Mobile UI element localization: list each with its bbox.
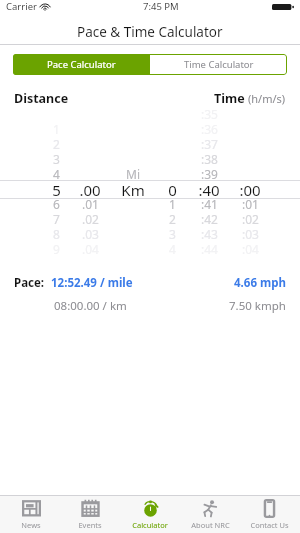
- staticText: 5: [52, 180, 61, 198]
- staticText: (h/m/s): [248, 91, 286, 106]
- staticText: :40: [198, 180, 220, 198]
- button[interactable]: About NRC: [181, 499, 239, 530]
- button[interactable]: Time Calculator: [150, 54, 287, 75]
- staticText: 4: [169, 241, 176, 257]
- staticText: News: [21, 520, 41, 530]
- staticText: Pace & Time Calculator: [77, 23, 223, 41]
- staticText: .03: [82, 226, 99, 242]
- staticText: Mi: [126, 166, 140, 182]
- staticText: About NRC: [191, 520, 230, 530]
- button[interactable]: Contact Us: [240, 499, 298, 530]
- staticText: :04: [242, 241, 259, 257]
- staticText: Calculator: [132, 520, 168, 530]
- staticText: 7: [53, 211, 60, 227]
- staticText: Time: [214, 90, 248, 107]
- staticText: Contact Us: [250, 520, 289, 530]
- staticText: 1: [53, 121, 60, 137]
- staticText: 8: [53, 226, 60, 242]
- other: Calculator: [141, 499, 160, 518]
- staticText: Pace:: [14, 275, 45, 291]
- button[interactable]: Calculator: [121, 499, 179, 530]
- staticText: 2: [53, 136, 60, 152]
- staticText: :37: [201, 136, 218, 152]
- staticText: 4: [53, 166, 60, 182]
- staticText: 1: [169, 196, 176, 212]
- staticText: 9: [53, 241, 60, 257]
- staticText: Time Calculator: [184, 58, 254, 71]
- staticText: 2: [169, 211, 176, 227]
- button[interactable]: News: [2, 499, 60, 530]
- staticText: :41: [201, 196, 218, 212]
- staticText: 7:45 PM: [143, 0, 179, 13]
- staticText: :01: [242, 196, 259, 212]
- staticText: :42: [201, 211, 218, 227]
- staticText: :43: [201, 226, 218, 242]
- staticText: 6: [53, 196, 60, 212]
- staticText: :38: [201, 151, 218, 167]
- staticText: :35: [201, 106, 218, 122]
- staticText: Pace Calculator: [47, 58, 116, 71]
- staticText: .00: [79, 180, 101, 198]
- staticText: Events: [78, 520, 102, 530]
- staticText: :44: [201, 241, 218, 257]
- staticText: 7.50 kmph: [229, 298, 286, 314]
- staticText: .04: [82, 241, 99, 257]
- staticText: :36: [201, 121, 218, 137]
- staticText: :02: [242, 211, 259, 227]
- staticText: :39: [201, 166, 218, 182]
- staticText: 3: [169, 226, 176, 242]
- staticText: 08:00.00 / km: [54, 298, 127, 314]
- staticText: 4.66 mph: [234, 275, 286, 291]
- staticText: Distance: [14, 90, 69, 107]
- staticText: .01: [82, 196, 99, 212]
- staticText: :03: [242, 226, 259, 242]
- staticText: Carrier: [6, 0, 37, 13]
- staticText: .02: [82, 211, 99, 227]
- staticText: 3: [53, 151, 60, 167]
- staticText: 12:52.49 / mile: [51, 275, 133, 291]
- staticText: 0: [168, 180, 177, 198]
- staticText: :00: [239, 180, 261, 198]
- button[interactable]: Events: [61, 499, 119, 530]
- button[interactable]: 1: [0, 115, 300, 257]
- button[interactable]: Pace Calculator: [13, 54, 150, 75]
- staticText: Km: [121, 180, 145, 198]
